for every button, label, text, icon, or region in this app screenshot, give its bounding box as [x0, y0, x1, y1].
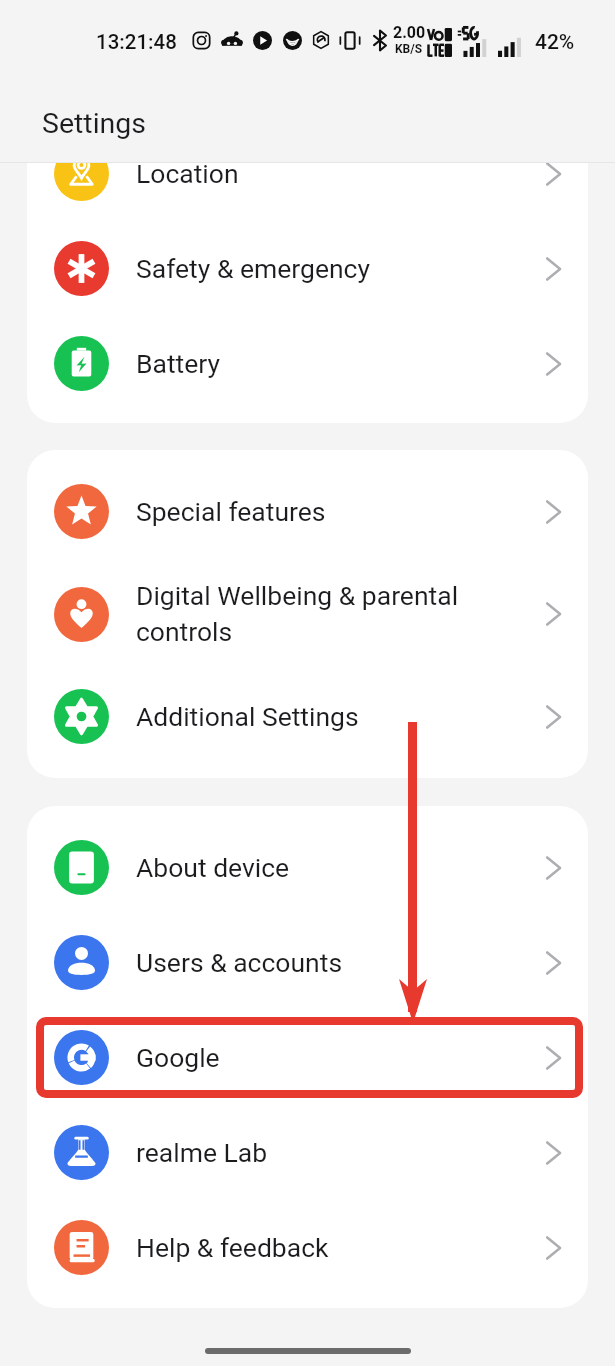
button[interactable]: Location — [27, 126, 588, 221]
staticText: Digital Wellbeing & parental controls — [136, 580, 546, 648]
button[interactable]: Google — [27, 1010, 588, 1105]
staticText: KB/S — [395, 42, 423, 56]
button[interactable]: Battery — [27, 316, 588, 411]
staticText: Additional Settings — [136, 701, 546, 732]
staticText: Help & feedback — [136, 1232, 546, 1263]
staticText: Battery — [136, 348, 546, 379]
staticText: Users & accounts — [136, 947, 546, 978]
staticText: Location — [136, 158, 546, 189]
button[interactable]: Digital Wellbeing & parental controls — [27, 559, 588, 669]
staticText: 13:21:48 — [96, 30, 177, 54]
staticText: Special features — [136, 496, 546, 527]
button[interactable]: Special features — [27, 464, 588, 559]
staticText: Settings — [42, 107, 147, 140]
button[interactable]: realme Lab — [27, 1105, 588, 1200]
button[interactable]: Safety & emergency — [27, 221, 588, 316]
button[interactable]: Users & accounts — [27, 915, 588, 1010]
button[interactable]: About device — [27, 820, 588, 915]
button[interactable]: Help & feedback — [27, 1200, 588, 1295]
staticText: 2.00 — [393, 23, 426, 42]
button[interactable]: Additional Settings — [27, 669, 588, 764]
staticText: Safety & emergency — [136, 253, 546, 284]
staticText: About device — [136, 852, 546, 883]
staticText: Google — [136, 1042, 546, 1073]
staticText: 42% — [535, 30, 575, 55]
staticText: realme Lab — [136, 1137, 546, 1168]
